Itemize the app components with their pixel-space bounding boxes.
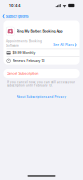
staticText: $9.99 Monthly: [13, 51, 36, 55]
staticText: About Subscriptions and Privacy: [16, 95, 66, 99]
staticText: Cancel Subscription: [6, 72, 38, 75]
staticText: If you cancel now, you can still access …: [7, 80, 75, 87]
button[interactable]: About Subscriptions and Privacy: [16, 94, 66, 100]
staticText: Ring My Barber: Booking App: [16, 29, 62, 33]
staticText: Subscriptions: [5, 14, 28, 19]
button[interactable]: Subscriptions: [0, 13, 32, 19]
staticText: Renews February 13: [13, 59, 45, 63]
staticText: Appointments Booking: [6, 39, 42, 43]
button[interactable]: Cancel Subscription: [3, 69, 79, 78]
staticText: See All Plans: [53, 43, 74, 47]
button[interactable]: See All Plans: [53, 43, 76, 46]
staticText: Software: [6, 44, 19, 47]
staticText: 10:44: [9, 3, 21, 8]
